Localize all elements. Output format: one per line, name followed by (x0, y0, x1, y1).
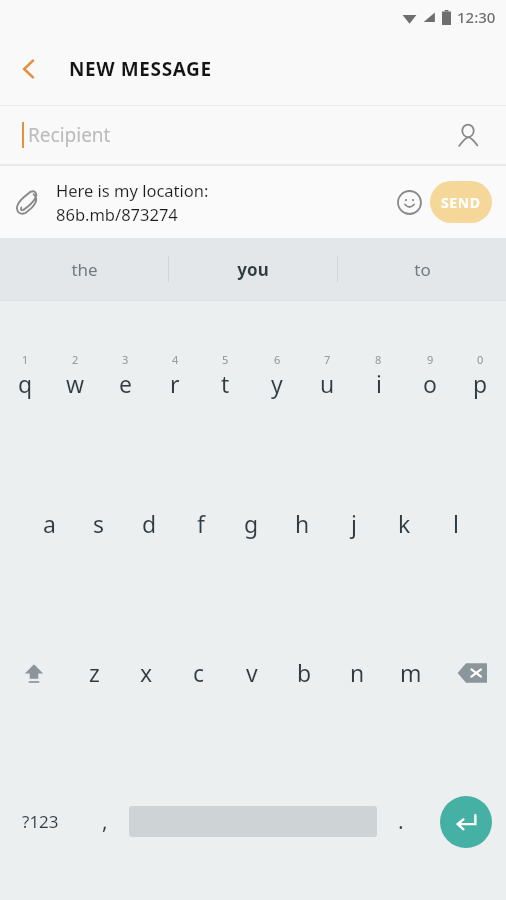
button[interactable]: 6 (251, 301, 302, 449)
staticText: c (193, 657, 205, 688)
staticText: l (453, 508, 459, 539)
button[interactable]: you (169, 238, 337, 300)
staticText: e (119, 368, 132, 399)
staticText: 3 (122, 352, 129, 367)
staticText: 0 (477, 352, 484, 367)
staticText: q (18, 368, 33, 399)
button[interactable] (129, 747, 377, 896)
button[interactable]: a (24, 449, 74, 598)
staticText: g (244, 508, 259, 539)
staticText: h (295, 508, 310, 539)
button[interactable]: the (0, 238, 168, 300)
button[interactable]: k (379, 449, 430, 598)
staticText: 8 (375, 352, 382, 367)
staticText: o (423, 368, 437, 399)
button[interactable]: ?123 (0, 747, 81, 896)
staticText: m (400, 657, 422, 688)
button[interactable]: 1 (0, 301, 50, 449)
staticText: . (398, 807, 404, 836)
staticText: 5 (222, 352, 229, 367)
staticText: r (170, 368, 180, 399)
staticText: j (351, 508, 357, 539)
staticText: b (297, 657, 312, 688)
button[interactable]: n (331, 598, 384, 747)
staticText: NEW MESSAGE (69, 56, 212, 82)
button[interactable]: Backspace (437, 598, 506, 747)
staticText: d (142, 508, 157, 539)
button[interactable]: j (328, 449, 379, 598)
button[interactable]: 3 (100, 301, 150, 449)
button[interactable]: . (377, 747, 425, 896)
button[interactable]: Attach (6, 180, 50, 224)
button[interactable]: 8 (353, 301, 404, 449)
staticText: 4 (172, 352, 179, 367)
staticText: p (473, 368, 488, 399)
staticText: t (221, 368, 230, 399)
staticText: , (102, 807, 108, 836)
staticText: Recipient (28, 122, 111, 148)
button[interactable]: v (225, 598, 278, 747)
button[interactable]: Shift (0, 598, 68, 747)
staticText: n (350, 657, 365, 688)
button[interactable]: z (68, 598, 120, 747)
staticText: 1 (22, 352, 29, 367)
staticText: 9 (427, 352, 434, 367)
button[interactable]: Back (8, 48, 50, 90)
button[interactable]: Enter (440, 796, 492, 848)
button[interactable]: c (172, 598, 225, 747)
button[interactable]: h (277, 449, 328, 598)
button[interactable]: Add recipient from contacts (448, 115, 488, 155)
button[interactable]: s (74, 449, 124, 598)
staticText: s (93, 508, 105, 539)
button[interactable]: d (124, 449, 175, 598)
staticText: Here is my location: (56, 179, 209, 201)
button[interactable]: 4 (150, 301, 200, 449)
button[interactable]: 7 (302, 301, 353, 449)
staticText: 7 (324, 352, 331, 367)
staticText: 86b.mb/873274 (56, 203, 178, 225)
button[interactable]: b (278, 598, 331, 747)
button[interactable]: 2 (50, 301, 100, 449)
staticText: u (320, 368, 335, 399)
button[interactable]: g (226, 449, 277, 598)
staticText: v (246, 657, 258, 688)
staticText: i (376, 368, 382, 399)
staticText: w (66, 368, 85, 399)
button[interactable]: , (81, 747, 129, 896)
staticText: ?123 (22, 810, 59, 833)
staticText: to (414, 258, 431, 281)
button[interactable]: f (175, 449, 226, 598)
button[interactable]: x (120, 598, 172, 747)
button[interactable]: Recipient (0, 106, 506, 164)
button[interactable]: to (338, 238, 506, 300)
staticText: x (140, 657, 153, 688)
button[interactable]: 0 (455, 301, 506, 449)
staticText: 6 (274, 352, 281, 367)
staticText: k (398, 508, 411, 539)
staticText: the (71, 258, 98, 281)
button[interactable]: Emoji (388, 181, 430, 223)
staticText: a (43, 508, 56, 539)
staticText: f (197, 508, 205, 539)
button[interactable]: 9 (404, 301, 455, 449)
button[interactable]: m (384, 598, 437, 747)
button[interactable]: SEND (430, 181, 492, 223)
button[interactable]: 5 (200, 301, 251, 449)
staticText: z (89, 657, 100, 688)
staticText: you (237, 258, 269, 281)
button[interactable]: l (430, 449, 481, 598)
staticText: y (271, 368, 283, 399)
staticText: SEND (441, 193, 481, 212)
staticText: 12:30 (457, 7, 496, 27)
staticText: 2 (72, 352, 79, 367)
